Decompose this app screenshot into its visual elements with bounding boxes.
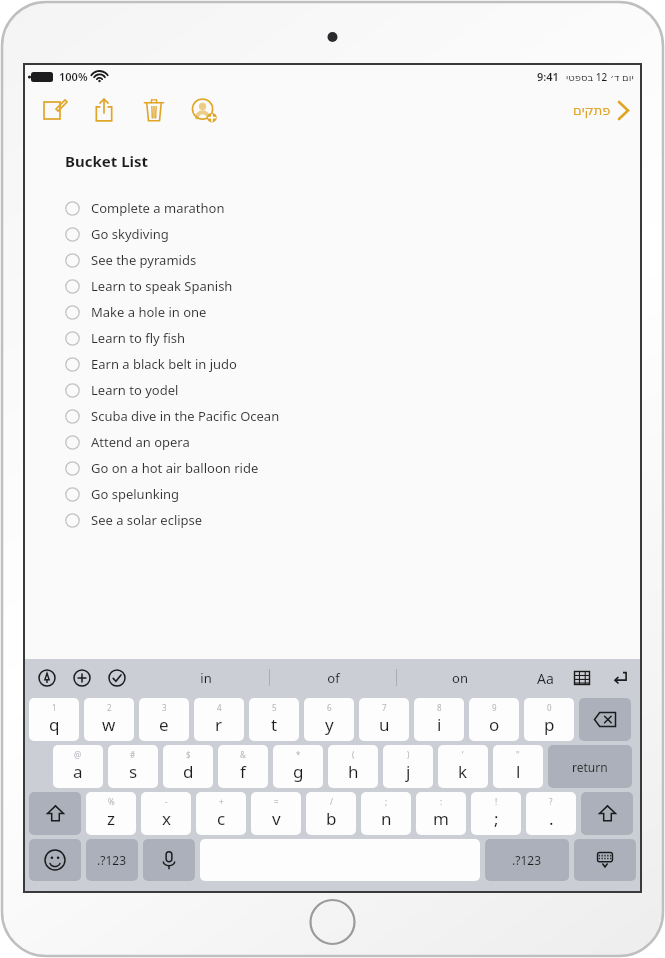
staticText: q: [49, 713, 60, 736]
button[interactable]: .?123: [485, 839, 569, 881]
button[interactable]: Earn a black belt in judo: [65, 351, 640, 377]
button[interactable]: Delete: [139, 95, 169, 125]
staticText: 9: [492, 702, 497, 713]
staticText: 2: [107, 702, 112, 713]
button[interactable]: /: [306, 792, 356, 835]
button[interactable]: Scuba dive in the Pacific Ocean: [65, 403, 640, 429]
staticText: Learn to fly fish: [91, 329, 186, 347]
staticText: 5: [272, 702, 277, 713]
staticText: @: [74, 749, 82, 760]
button[interactable]: Text format: [532, 665, 558, 691]
staticText: m: [433, 807, 449, 830]
button[interactable]: .?123: [86, 839, 138, 881]
button[interactable]: %: [86, 792, 136, 835]
button[interactable]: Dictation: [143, 839, 195, 881]
staticText: j: [406, 760, 411, 783]
button[interactable]: Go skydiving: [65, 221, 640, 247]
staticText: in: [200, 669, 212, 687]
button[interactable]: 2: [84, 698, 134, 741]
button[interactable]: Make a hole in one: [65, 299, 640, 325]
button[interactable]: Compose note: [39, 95, 69, 125]
staticText: פתקים: [573, 103, 611, 118]
button[interactable]: ?: [526, 792, 576, 835]
staticText: $: [186, 749, 191, 760]
button[interactable]: 3: [139, 698, 189, 741]
button[interactable]: ): [383, 745, 433, 788]
button[interactable]: Emoji: [29, 839, 81, 881]
button[interactable]: on: [397, 659, 523, 696]
button[interactable]: Table: [570, 666, 594, 690]
staticText: #: [130, 749, 136, 760]
button[interactable]: Learn to yodel: [65, 377, 640, 403]
button[interactable]: Add people: [189, 95, 219, 125]
staticText: Attend an opera: [91, 433, 190, 451]
button[interactable]: 5: [249, 698, 299, 741]
button[interactable]: in: [142, 659, 269, 696]
button[interactable]: &: [218, 745, 268, 788]
button[interactable]: +: [196, 792, 246, 835]
staticText: y: [325, 713, 334, 736]
button[interactable]: 8: [414, 698, 464, 741]
button[interactable]: $: [163, 745, 213, 788]
button[interactable]: ;: [361, 792, 411, 835]
button[interactable]: !: [471, 792, 521, 835]
staticText: w: [102, 713, 116, 736]
staticText: n: [381, 807, 392, 830]
staticText: x: [162, 807, 171, 830]
button[interactable]: 6: [304, 698, 354, 741]
button[interactable]: Complete a marathon: [65, 195, 640, 221]
button[interactable]: פתקים: [563, 94, 640, 127]
staticText: ;: [385, 796, 388, 807]
button[interactable]: of: [270, 659, 396, 696]
button[interactable]: ": [493, 745, 543, 788]
staticText: e: [159, 713, 169, 736]
button[interactable]: Attend an opera: [65, 429, 640, 455]
staticText: of: [327, 669, 340, 687]
staticText: l: [516, 760, 521, 783]
staticText: 1: [52, 702, 57, 713]
button[interactable]: Share: [89, 95, 119, 125]
button[interactable]: 7: [359, 698, 409, 741]
button[interactable]: ‘: [438, 745, 488, 788]
button[interactable]: *: [273, 745, 323, 788]
staticText: ": [516, 749, 520, 760]
staticText: 4: [217, 702, 222, 713]
staticText: Learn to yodel: [91, 381, 179, 399]
button[interactable]: Go spelunking: [65, 481, 640, 507]
button[interactable]: See a solar eclipse: [65, 507, 640, 533]
staticText: b: [326, 807, 337, 830]
button[interactable]: See the pyramids: [65, 247, 640, 273]
button[interactable]: Learn to speak Spanish: [65, 273, 640, 299]
button[interactable]: @: [53, 745, 103, 788]
button[interactable]: 0: [524, 698, 574, 741]
button[interactable]: 1: [29, 698, 79, 741]
button[interactable]: Shift: [581, 792, 633, 835]
button[interactable]: -: [141, 792, 191, 835]
button[interactable]: return: [548, 745, 632, 788]
button[interactable]: :: [416, 792, 466, 835]
button[interactable]: Go on a hot air balloon ride: [65, 455, 640, 481]
button[interactable]: Markup: [35, 666, 59, 690]
button[interactable]: 4: [194, 698, 244, 741]
staticText: See the pyramids: [91, 251, 197, 269]
staticText: p: [544, 713, 555, 736]
button[interactable]: Hide keyboard: [606, 666, 630, 690]
staticText: 3: [162, 702, 167, 713]
staticText: on: [452, 669, 468, 687]
button[interactable]: (: [328, 745, 378, 788]
button[interactable]: Hide keyboard: [574, 839, 636, 881]
button[interactable]: Checklist: [105, 666, 129, 690]
staticText: :: [440, 796, 443, 807]
button[interactable]: 9: [469, 698, 519, 741]
button[interactable]: =: [251, 792, 301, 835]
staticText: h: [348, 760, 359, 783]
button[interactable]: Shift: [29, 792, 81, 835]
button[interactable]: Add attachment: [70, 666, 94, 690]
button[interactable]: Learn to fly fish: [65, 325, 640, 351]
staticText: &: [240, 749, 246, 760]
staticText: k: [458, 760, 468, 783]
staticText: r: [215, 713, 223, 736]
button[interactable]: #: [108, 745, 158, 788]
button[interactable]: Backspace: [579, 698, 631, 741]
